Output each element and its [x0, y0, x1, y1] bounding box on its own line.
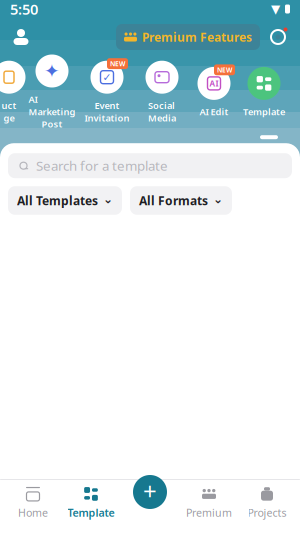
button[interactable]: Home	[4, 482, 62, 524]
button[interactable]: Settings	[260, 24, 296, 50]
staticText: Social Media	[148, 99, 176, 124]
staticText: Projects	[247, 505, 286, 520]
staticText: uct	[1, 99, 16, 112]
staticText: Home	[18, 505, 48, 520]
button[interactable]: Projects	[238, 482, 296, 524]
staticText: Invitation	[84, 112, 129, 124]
button[interactable]: All Formats	[130, 186, 232, 215]
button[interactable]: Template	[238, 64, 290, 118]
staticText: ✓	[102, 71, 111, 83]
staticText: Post	[41, 118, 62, 130]
staticText: ⌄	[103, 192, 113, 206]
button[interactable]: AI	[190, 64, 238, 118]
staticText: Premium Features	[142, 29, 252, 45]
button[interactable]: ✓	[80, 58, 134, 124]
staticText: Event	[94, 99, 119, 112]
button[interactable]: Search for a template	[8, 153, 292, 178]
staticText: ge	[3, 112, 14, 124]
staticText: NEW	[217, 65, 232, 74]
staticText: ▼	[271, 2, 280, 16]
staticText: ⌄	[213, 192, 223, 206]
staticText: All Templates	[17, 192, 98, 208]
button[interactable]: Profile	[4, 24, 38, 50]
staticText: +	[143, 475, 157, 507]
button[interactable]: ✦	[24, 52, 80, 130]
staticText: AI Marketing	[28, 93, 75, 118]
staticText: Premium	[186, 505, 232, 520]
staticText: NEW	[110, 59, 125, 68]
staticText: ✦	[44, 60, 60, 82]
staticText: Template	[67, 505, 114, 520]
staticText: AI	[209, 78, 218, 89]
button[interactable]: Premium Features	[116, 24, 260, 50]
staticText: All Formats	[139, 192, 208, 208]
staticText: 5:50	[10, 0, 38, 19]
staticText: AI Edit	[199, 105, 228, 118]
button[interactable]: Social Media	[134, 58, 190, 124]
button[interactable]: uct	[0, 58, 24, 124]
button[interactable]: All Templates	[8, 186, 122, 215]
button[interactable]: Template	[62, 482, 120, 524]
button[interactable]: Create	[130, 472, 170, 512]
button[interactable]: Premium	[180, 482, 238, 524]
staticText: Template	[243, 105, 285, 118]
staticText: Search for a template	[36, 157, 168, 174]
